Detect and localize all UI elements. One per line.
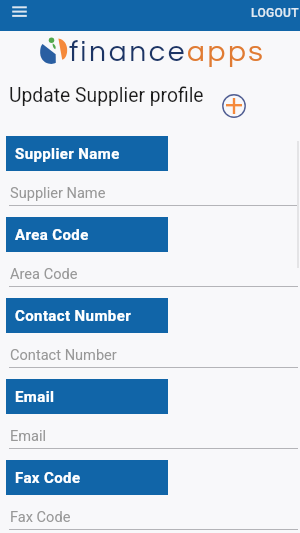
button[interactable]: Fax Code xyxy=(6,460,168,495)
button[interactable]: Add new supplier xyxy=(222,94,246,118)
staticText: LOGOUT xyxy=(251,6,299,20)
button[interactable]: Contact Number xyxy=(6,298,168,333)
staticText: Update Supplier profile xyxy=(9,84,204,107)
button[interactable]: Open navigation menu xyxy=(6,2,33,29)
staticText: Area Code xyxy=(10,265,78,282)
button[interactable]: LOGOUT xyxy=(248,2,300,24)
button[interactable]: Area Code xyxy=(6,217,168,252)
staticText: Fax Code xyxy=(10,508,71,525)
staticText: Email xyxy=(15,388,55,406)
staticText: Area Code xyxy=(15,226,89,244)
staticText: apps xyxy=(187,36,266,67)
staticText: Supplier Name xyxy=(15,145,120,163)
button[interactable]: Supplier Name xyxy=(6,136,168,171)
staticText: Contact Number xyxy=(15,307,132,325)
staticText: Email xyxy=(10,427,47,444)
staticText: finance xyxy=(69,36,187,67)
staticText: Fax Code xyxy=(15,469,81,487)
button[interactable]: Email xyxy=(6,379,168,414)
staticText: Contact Number xyxy=(10,346,117,363)
staticText: Supplier Name xyxy=(10,184,106,201)
